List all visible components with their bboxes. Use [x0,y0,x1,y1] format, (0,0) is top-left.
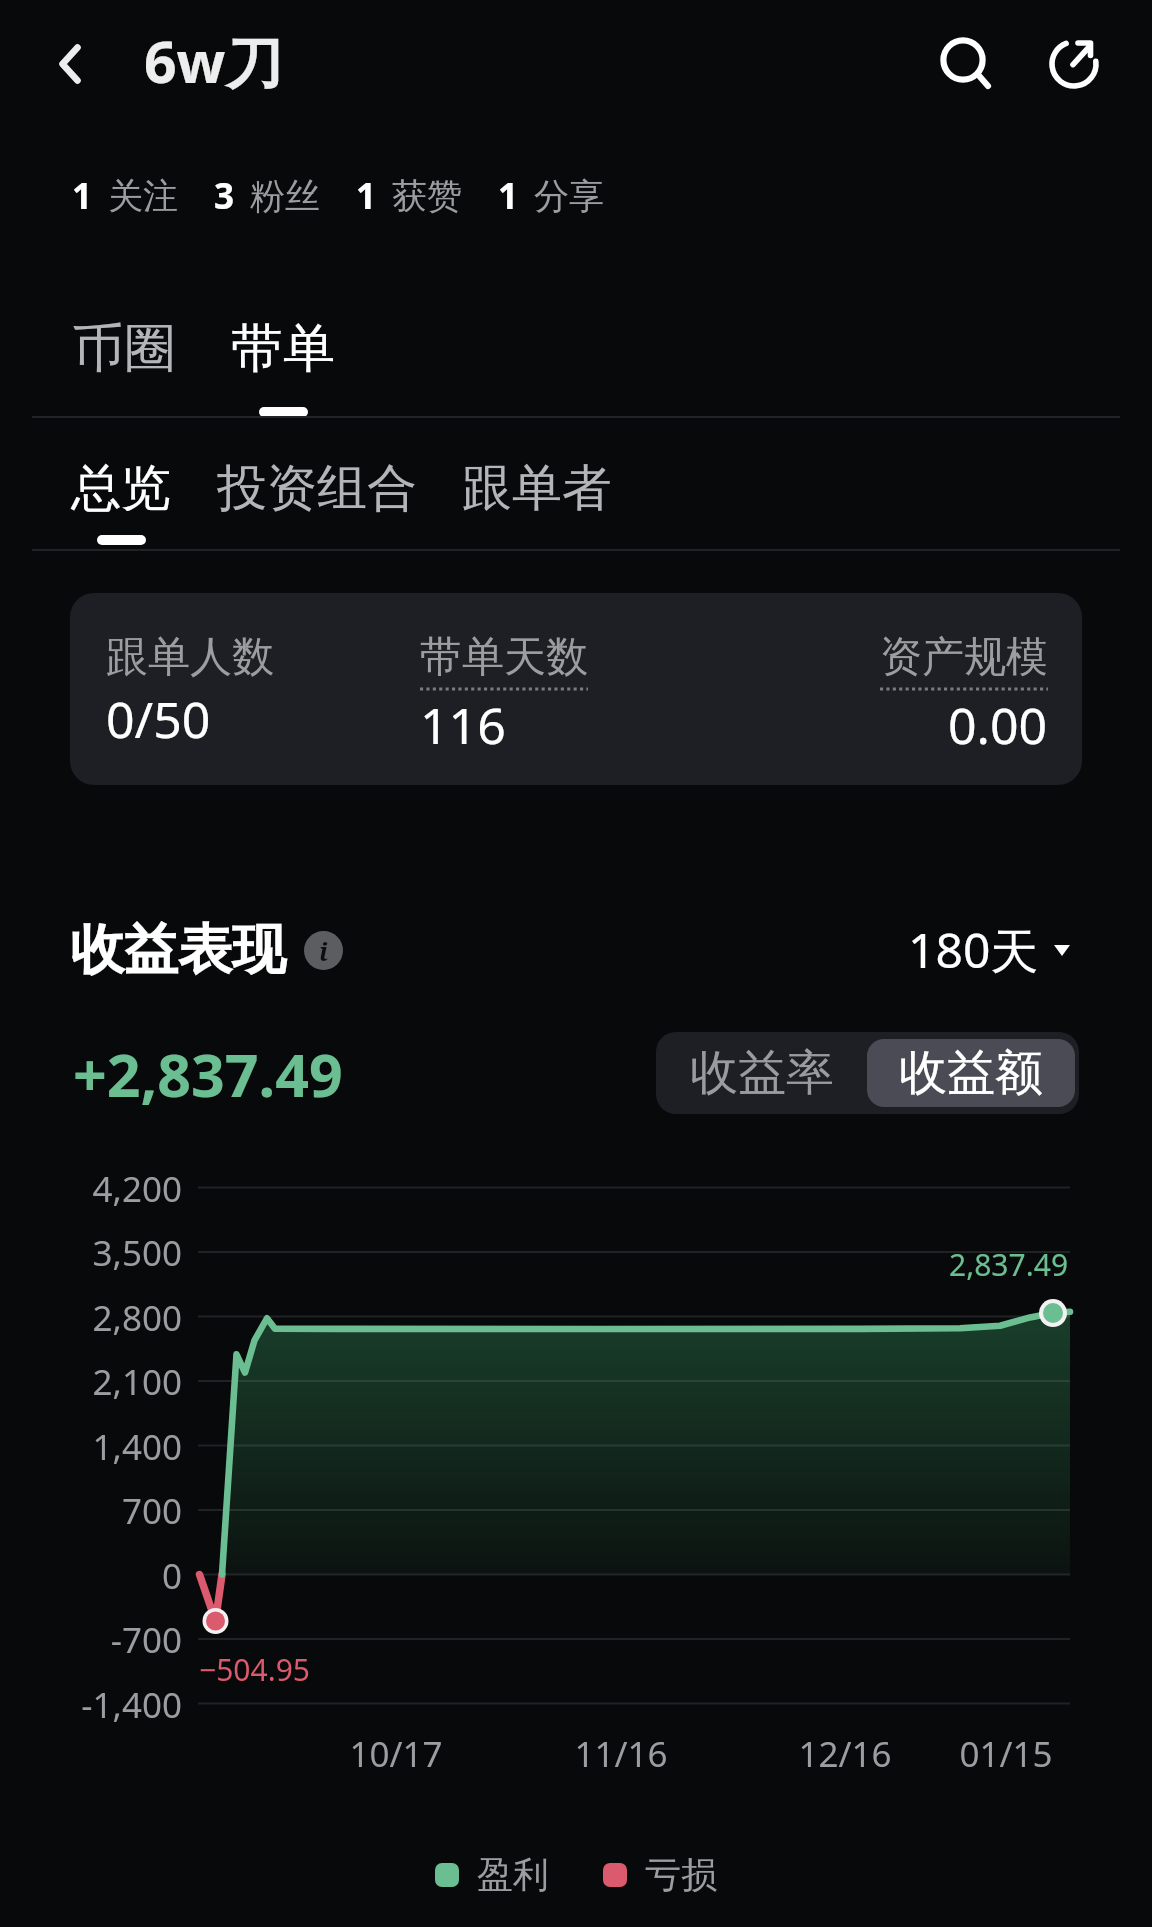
button[interactable]: 投资组合 [217,457,417,542]
staticText: 12/16 [798,1730,892,1778]
button[interactable]: 1 [356,168,462,224]
staticText: 116 [420,691,506,759]
staticText: 2,837.49 [949,1244,1069,1285]
button[interactable]: 收益率 [656,1032,867,1114]
staticText: 4,200 [92,1165,182,1213]
staticText: 资产规模 [880,631,1048,684]
staticText: 3,500 [92,1229,182,1277]
staticText: 投资组合 [217,457,417,520]
staticText: 带单 [231,316,335,382]
staticText: 跟单者 [462,457,612,520]
staticText: 10/17 [349,1730,443,1778]
staticText: 2,800 [92,1294,182,1342]
button[interactable]: Search [915,12,1011,108]
staticText: 跟单人数 [106,631,274,684]
button[interactable]: 带单 [231,316,335,417]
staticText: 700 [121,1487,182,1535]
staticText: 获赞 [392,174,462,218]
staticText: 币圈 [72,316,176,382]
button[interactable]: Info [304,931,343,970]
staticText: 1 [356,172,377,220]
staticText: 3 [214,172,235,220]
button[interactable]: 跟单人数 [70,593,1082,785]
staticText: 关注 [108,174,178,218]
staticText: 收益表现 [70,916,286,984]
staticText: -700 [110,1616,182,1664]
staticText: 带单天数 [420,631,588,684]
staticText: 总览 [71,457,171,520]
staticText: 0.00 [948,691,1048,759]
button[interactable]: 跟单者 [462,457,612,542]
staticText: +2,837.49 [73,1034,343,1114]
staticText: 1 [498,172,519,220]
staticText: 盈利 [477,1852,549,1897]
staticText: 收益额 [899,1043,1043,1103]
button[interactable]: 币圈 [72,316,176,417]
staticText: -1,400 [81,1681,182,1729]
button[interactable]: 总览 [71,457,171,545]
staticText: 11/16 [574,1730,668,1778]
staticText: 0 [161,1552,182,1600]
button[interactable]: 3 [214,168,320,224]
staticText: 180天 [908,917,1039,983]
staticText: 分享 [534,174,604,218]
button[interactable]: Back [22,16,118,112]
staticText: 01/15 [959,1730,1053,1778]
staticText: i [319,934,328,968]
staticText: −504.95 [199,1649,310,1690]
button[interactable]: 1 [498,168,604,224]
staticText: 粉丝 [250,174,320,218]
staticText: 0/50 [106,685,211,753]
staticText: 1,400 [92,1423,182,1471]
button[interactable]: 1 [72,168,178,224]
staticText: 6w刀 [144,22,283,100]
button[interactable]: Share [1026,16,1122,112]
staticText: 亏损 [645,1852,717,1897]
staticText: 收益率 [690,1043,834,1103]
button[interactable]: 收益额 [867,1039,1075,1107]
button[interactable]: 180天 [908,909,1070,991]
staticText: 1 [72,172,93,220]
staticText: 2,100 [92,1358,182,1406]
